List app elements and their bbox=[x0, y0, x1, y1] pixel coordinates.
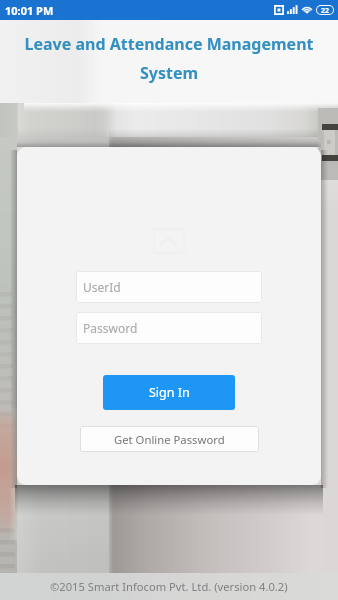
staticText: Get Online Password bbox=[114, 432, 225, 447]
staticText: ©2015 Smart Infocom Pvt. Ltd. (version 4… bbox=[50, 579, 288, 594]
staticText: UserId bbox=[83, 279, 121, 295]
staticText: Leave and Attendance Management System bbox=[8, 33, 330, 83]
button[interactable]: Password bbox=[76, 312, 262, 344]
button[interactable]: Sign In bbox=[103, 375, 235, 410]
staticText: Password bbox=[83, 320, 138, 336]
staticText: Sign In bbox=[149, 384, 190, 401]
button[interactable]: UserId bbox=[76, 271, 262, 303]
staticText: 22 bbox=[321, 6, 330, 14]
button[interactable]: Get Online Password bbox=[80, 426, 259, 452]
staticText: 10:01 PM bbox=[5, 3, 54, 18]
